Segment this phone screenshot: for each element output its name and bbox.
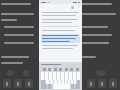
button[interactable]: Search bbox=[70, 5, 74, 9]
button[interactable] bbox=[87, 79, 95, 88]
button[interactable] bbox=[41, 34, 80, 43]
button[interactable]: More options bbox=[76, 5, 80, 9]
button[interactable] bbox=[25, 79, 33, 88]
button[interactable] bbox=[3, 79, 11, 88]
button[interactable] bbox=[109, 79, 117, 88]
button[interactable] bbox=[14, 79, 22, 88]
button[interactable] bbox=[98, 79, 106, 88]
